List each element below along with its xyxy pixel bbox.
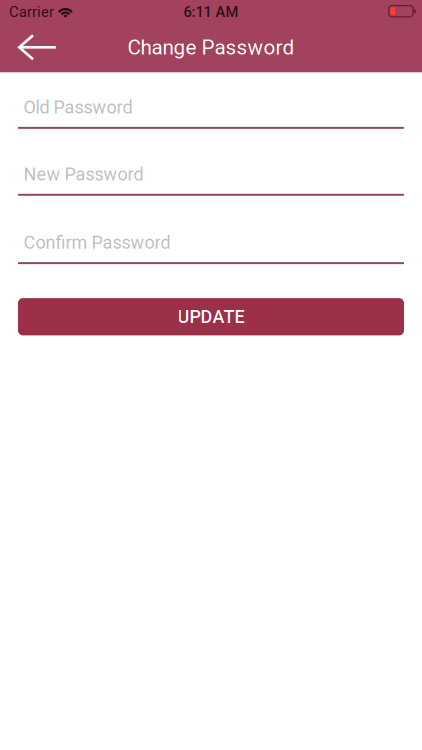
- staticText: Carrier: [9, 3, 54, 21]
- staticText: UPDATE: [177, 306, 244, 327]
- staticText: New Password: [23, 164, 143, 185]
- staticText: 6:11 AM: [183, 3, 238, 21]
- button[interactable]: Back: [0, 23, 65, 71]
- staticText: Confirm Password: [23, 232, 170, 253]
- staticText: Change Password: [127, 35, 294, 59]
- button[interactable]: UPDATE: [18, 298, 404, 335]
- staticText: Old Password: [23, 97, 132, 118]
